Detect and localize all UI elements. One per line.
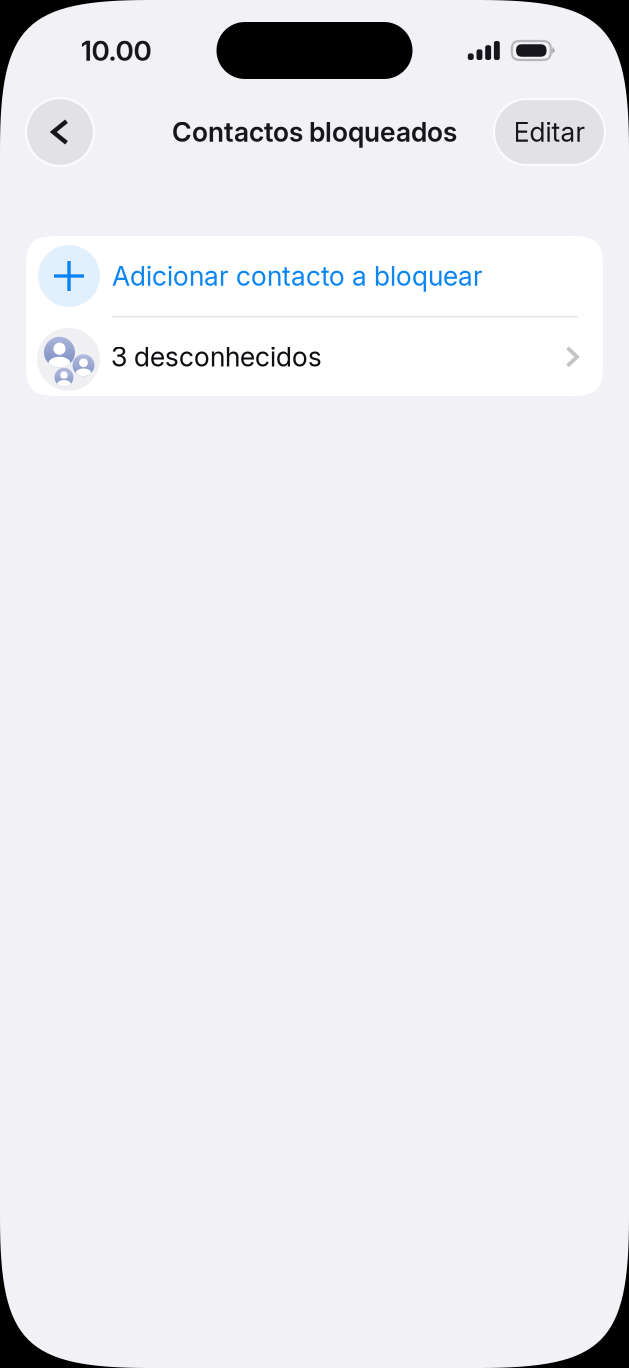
staticText: Contactos bloqueados [172,116,457,148]
button[interactable]: Back [26,98,94,166]
staticText: 3 desconhecidos [111,341,322,373]
button[interactable]: Editar [494,99,605,165]
staticText: Editar [513,116,585,148]
button[interactable]: Adicionar contacto a bloquear [26,236,603,316]
staticText: 10.00 [80,34,151,67]
staticText: Adicionar contacto a bloquear [112,260,483,292]
button[interactable]: 3 desconhecidos [26,318,603,396]
